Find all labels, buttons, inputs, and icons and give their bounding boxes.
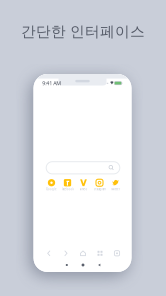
staticText: 간단한 인터페이스 (21, 22, 145, 40)
button[interactable]: Back (40, 249, 57, 257)
button[interactable]: Twitter (107, 178, 123, 192)
staticText: Instagram (93, 187, 105, 191)
staticText: vimeo (79, 187, 87, 191)
button[interactable]: Google (43, 178, 59, 192)
button[interactable]: Home (75, 262, 91, 267)
button[interactable]: Tabs (91, 249, 108, 257)
button[interactable]: Home (74, 249, 91, 257)
staticText: Google (46, 187, 57, 191)
button[interactable]: vimeo (75, 178, 91, 192)
button[interactable]: facebook (59, 178, 75, 192)
button[interactable]: Recents (59, 262, 75, 267)
staticText: 9:41 AM (42, 80, 61, 87)
button[interactable]: Forward (57, 249, 74, 257)
button[interactable]: Instagram (91, 178, 107, 192)
staticText: facebook (61, 187, 73, 191)
button[interactable]: Menu (108, 249, 125, 257)
staticText: Twitter (111, 187, 120, 191)
button[interactable]: Back (91, 262, 107, 267)
